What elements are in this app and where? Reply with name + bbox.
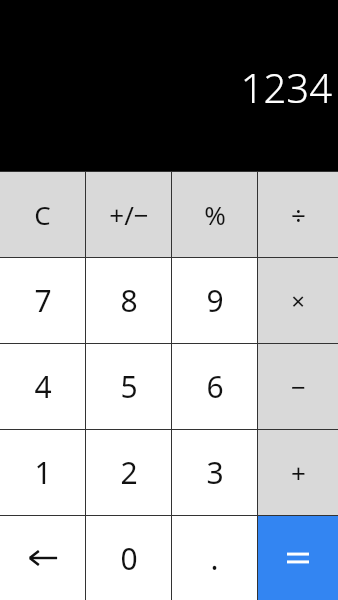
- staticText: 0: [120, 538, 138, 579]
- button[interactable]: 5: [86, 344, 171, 429]
- staticText: C: [34, 197, 51, 232]
- staticText: 6: [206, 366, 224, 407]
- staticText: 2: [120, 452, 138, 493]
- staticText: 8: [120, 280, 138, 321]
- staticText: 7: [34, 280, 52, 321]
- staticText: 9: [206, 280, 224, 321]
- button[interactable]: 3: [172, 430, 257, 515]
- staticText: %: [204, 197, 226, 232]
- staticText: +/−: [109, 197, 149, 232]
- staticText: +: [291, 455, 306, 490]
- button[interactable]: Decimal point: [172, 516, 257, 600]
- button[interactable]: Minus: [258, 344, 338, 429]
- button[interactable]: Divide: [258, 172, 338, 257]
- button[interactable]: 7: [0, 258, 85, 343]
- button[interactable]: 2: [86, 430, 171, 515]
- button[interactable]: Plus minus: [86, 172, 171, 257]
- staticText: 3: [206, 452, 224, 493]
- button[interactable]: Plus: [258, 430, 338, 515]
- staticText: −: [291, 369, 306, 404]
- staticText: 4: [34, 366, 52, 407]
- button[interactable]: 4: [0, 344, 85, 429]
- button[interactable]: Multiply: [258, 258, 338, 343]
- staticText: 5: [120, 366, 138, 407]
- button[interactable]: Backspace: [0, 516, 85, 600]
- button[interactable]: 0: [86, 516, 171, 600]
- button[interactable]: %: [172, 172, 257, 257]
- button[interactable]: 1: [0, 430, 85, 515]
- staticText: 1234: [240, 60, 332, 114]
- button[interactable]: 9: [172, 258, 257, 343]
- staticText: 1: [34, 452, 52, 493]
- staticText: ÷: [291, 197, 306, 232]
- button[interactable]: C: [0, 172, 85, 257]
- button[interactable]: 8: [86, 258, 171, 343]
- button[interactable]: 6: [172, 344, 257, 429]
- staticText: ×: [291, 284, 305, 317]
- staticText: .: [210, 538, 219, 579]
- button[interactable]: Equals: [258, 516, 338, 600]
